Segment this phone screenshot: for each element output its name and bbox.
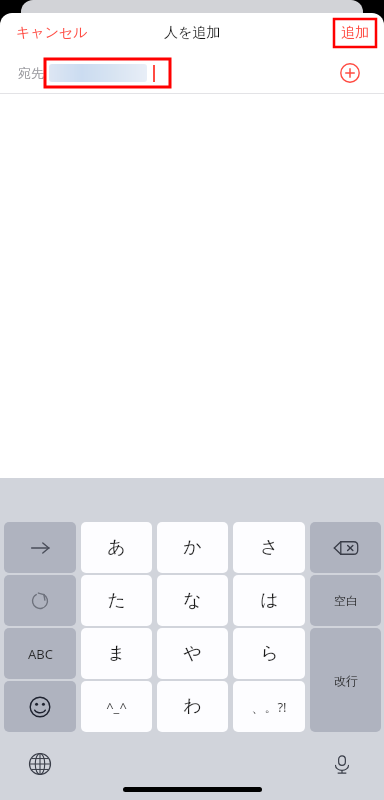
- staticText: あ: [107, 536, 126, 559]
- staticText: か: [183, 536, 202, 559]
- button[interactable]: た: [81, 575, 152, 626]
- staticText: ま: [107, 642, 126, 665]
- staticText: は: [260, 589, 279, 612]
- button[interactable]: 改行: [310, 628, 381, 732]
- staticText: 追加: [341, 24, 369, 42]
- staticText: ABC: [28, 645, 53, 663]
- staticText: や: [183, 642, 202, 665]
- button[interactable]: や: [157, 628, 228, 679]
- staticText: キャンセル: [16, 24, 88, 42]
- button[interactable]: は: [233, 575, 305, 626]
- staticText: ら: [260, 642, 279, 665]
- button[interactable]: キャンセル: [10, 20, 94, 46]
- button[interactable]: ま: [81, 628, 152, 679]
- button[interactable]: か: [157, 522, 228, 573]
- button[interactable]: [45, 59, 170, 87]
- button[interactable]: 、。?!: [233, 681, 305, 732]
- staticText: 宛先: [18, 65, 44, 81]
- button[interactable]: わ: [157, 681, 228, 732]
- staticText: 、。?!: [251, 698, 287, 716]
- staticText: さ: [260, 536, 279, 559]
- staticText: な: [183, 589, 202, 612]
- button[interactable]: さ: [233, 522, 305, 573]
- button[interactable]: あ: [81, 522, 152, 573]
- button[interactable]: 追加: [334, 19, 376, 47]
- button[interactable]: ら: [233, 628, 305, 679]
- staticText: ^_^: [106, 698, 127, 716]
- button[interactable]: 取り消し: [4, 575, 76, 626]
- button[interactable]: な: [157, 575, 228, 626]
- button[interactable]: ^_^: [81, 681, 152, 732]
- staticText: た: [107, 589, 126, 612]
- button[interactable]: ABC: [4, 628, 76, 679]
- staticText: 空白: [334, 593, 358, 608]
- staticText: 改行: [334, 673, 358, 688]
- button[interactable]: 音声入力: [328, 750, 356, 778]
- button[interactable]: キーボードを切り替え: [26, 750, 54, 778]
- button[interactable]: 次候補: [4, 522, 76, 573]
- button[interactable]: 連絡先を追加: [338, 61, 362, 85]
- button[interactable]: 空白: [310, 575, 381, 626]
- staticText: 人を追加: [164, 24, 221, 42]
- button[interactable]: 絵文字: [4, 681, 76, 732]
- staticText: わ: [183, 695, 202, 718]
- button[interactable]: 削除: [310, 522, 381, 573]
